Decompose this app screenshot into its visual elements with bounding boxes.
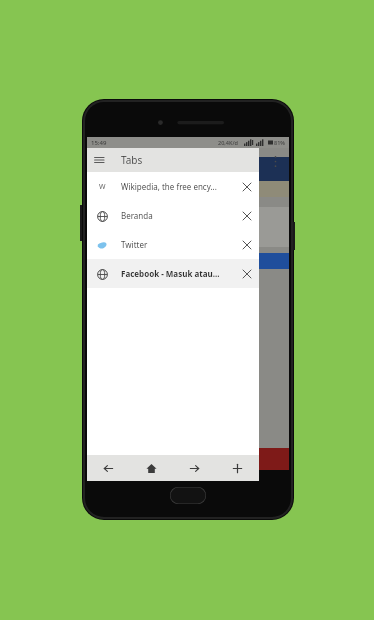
staticText: Beranda (121, 210, 235, 221)
button[interactable]: Home (130, 455, 173, 481)
button[interactable]: Menu (87, 148, 111, 172)
button[interactable]: More options (265, 150, 285, 172)
button[interactable]: Forward (173, 455, 216, 481)
button[interactable]: Home button (170, 487, 206, 504)
button[interactable]: Back (87, 455, 130, 481)
staticText: Facebook - Masuk atau... (121, 268, 235, 279)
staticText: Tabs (121, 153, 143, 167)
button[interactable]: Close tab (235, 201, 259, 230)
button[interactable]: Beranda (87, 201, 259, 230)
staticText: 15:49 (91, 139, 107, 147)
button[interactable]: W (87, 172, 259, 201)
staticText: Twitter (121, 239, 235, 250)
staticText: W (99, 182, 106, 192)
button[interactable]: Close tab (235, 230, 259, 259)
staticText: 20,4K/d (218, 139, 238, 146)
button[interactable]: Close tab (235, 259, 259, 288)
button[interactable]: New tab (216, 455, 259, 481)
button[interactable]: Close tab (235, 172, 259, 201)
staticText: Wikipedia, the free ency... (121, 181, 235, 192)
staticText: 81% (274, 139, 285, 146)
button[interactable]: Facebook - Masuk atau... (87, 259, 259, 288)
button[interactable]: Twitter (87, 230, 259, 259)
